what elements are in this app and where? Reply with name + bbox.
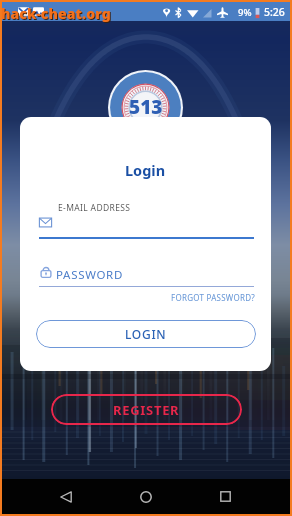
button[interactable]: FORGOT PASSWORD?: [171, 292, 255, 303]
button[interactable]: REGISTER: [51, 394, 242, 425]
staticText: hack-cheat.org: [2, 5, 112, 24]
staticText: E-MAIL ADDRESS: [58, 202, 131, 214]
button[interactable]: LOGIN: [36, 320, 256, 348]
staticText: hack-cheat.org: [1, 4, 111, 23]
staticText: REGISTER: [113, 401, 180, 419]
staticText: LOGIN: [125, 326, 167, 342]
staticText: Login: [125, 160, 166, 180]
staticText: 513: [129, 94, 163, 120]
staticText: PASSWORD: [56, 267, 124, 283]
button[interactable]: Home: [130, 479, 162, 514]
button[interactable]: Recent apps: [209, 479, 241, 514]
staticText: 5:26: [264, 5, 285, 19]
button[interactable]: Back: [50, 479, 82, 514]
staticText: 9%: [238, 6, 252, 19]
